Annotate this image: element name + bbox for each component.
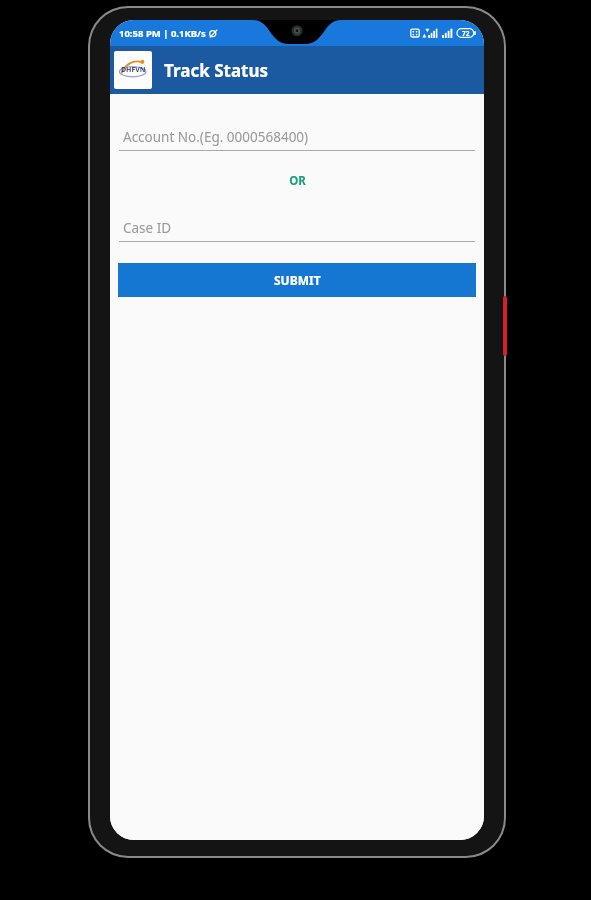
staticText: OR — [289, 173, 306, 189]
staticText: SUBMIT — [274, 272, 321, 288]
button[interactable]: App logo — [114, 51, 152, 89]
button[interactable]: SUBMIT — [118, 263, 476, 297]
staticText: DHFVN — [121, 65, 146, 75]
staticText: 72 — [462, 29, 470, 38]
staticText: Case ID — [123, 219, 172, 237]
staticText: 10:58 PM | 0.1KB/s — [119, 27, 206, 40]
staticText: Account No.(Eg. 0000568400) — [123, 128, 309, 146]
button[interactable]: Account No.(Eg. 0000568400) — [119, 124, 475, 151]
staticText: Track Status — [164, 59, 269, 82]
button[interactable]: Case ID — [119, 215, 475, 242]
